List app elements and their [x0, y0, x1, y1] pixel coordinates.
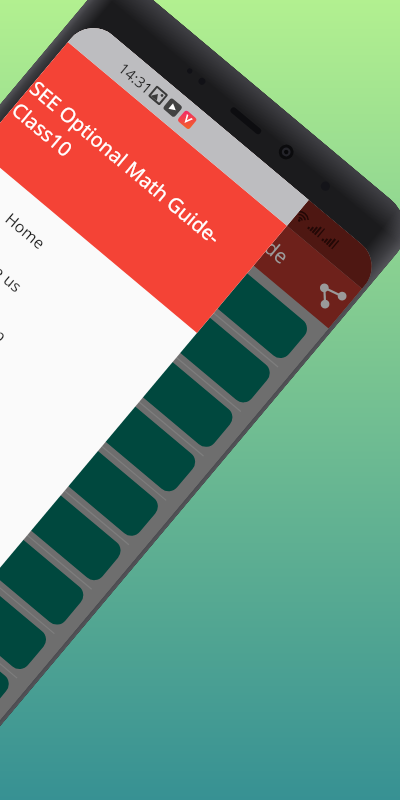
staticText: SEE Optional Math Guide-Class10: [6, 75, 242, 285]
staticText: Rate us: [0, 244, 27, 297]
button[interactable]: Share app: [0, 229, 130, 449]
button[interactable]: Privacy policy: [0, 302, 68, 523]
staticText: Home: [1, 208, 50, 254]
button[interactable]: Rate us: [0, 192, 161, 413]
staticText: 14:31: [115, 58, 157, 98]
button[interactable]: Home: [0, 155, 192, 376]
button[interactable]: Share: [305, 270, 355, 321]
button[interactable]: [34, 42, 362, 329]
button[interactable]: More apps: [0, 266, 99, 486]
staticText: SEE Optional Math Guide: [97, 98, 295, 270]
staticText: Share app: [0, 281, 12, 347]
